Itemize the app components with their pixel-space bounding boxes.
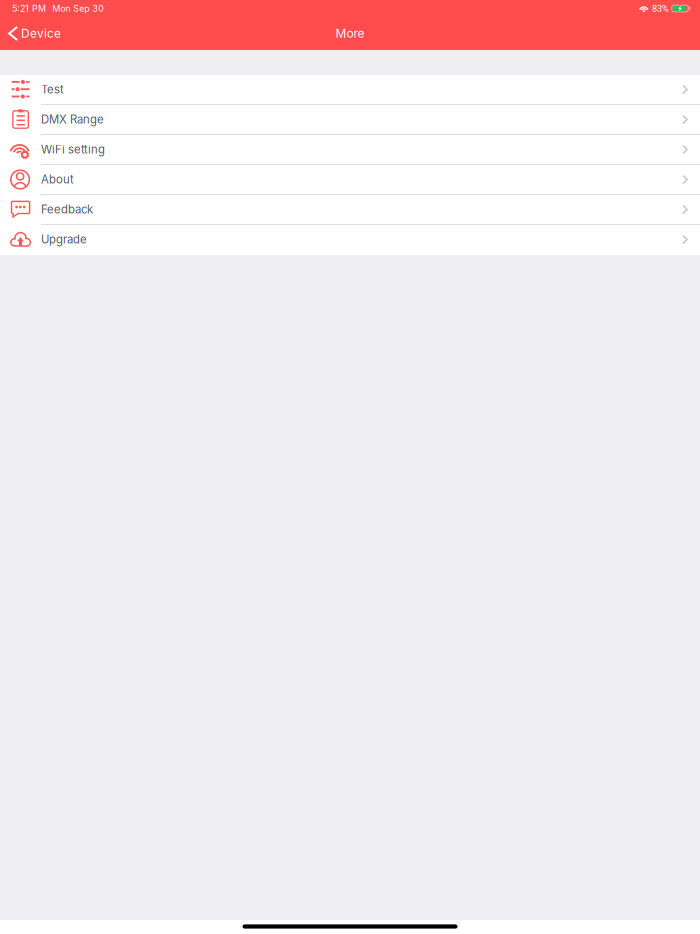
staticText: Mon Sep 30 (52, 3, 104, 14)
button[interactable]: Device (0, 17, 69, 50)
button[interactable]: Upgrade (0, 225, 700, 255)
staticText: Test (41, 83, 64, 96)
staticText: WiFi setting (41, 143, 105, 156)
staticText: Device (21, 26, 61, 41)
staticText: 5:21 PM (12, 3, 46, 14)
staticText: About (41, 173, 74, 186)
button[interactable]: Feedback (0, 195, 700, 225)
staticText: 83% (652, 3, 669, 14)
button[interactable]: Test (0, 75, 700, 105)
staticText: More (335, 26, 364, 41)
staticText: Upgrade (41, 233, 87, 246)
button[interactable]: WiFi setting (0, 135, 700, 165)
staticText: DMX Range (41, 113, 104, 126)
button[interactable]: About (0, 165, 700, 195)
button[interactable]: DMX Range (0, 105, 700, 135)
staticText: Feedback (41, 203, 93, 216)
